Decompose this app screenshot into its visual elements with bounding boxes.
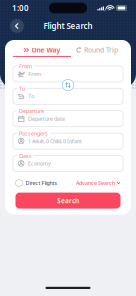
button[interactable]: To — [13, 88, 123, 104]
button[interactable]: Search — [15, 193, 120, 209]
button[interactable]: Round Trip — [71, 46, 123, 57]
staticText: 1 Adult, 0 Child, 0 Infant — [28, 138, 82, 145]
staticText: Departure date — [28, 115, 65, 122]
staticText: Search — [57, 196, 79, 205]
staticText: Departure — [19, 107, 44, 115]
staticText: Flight Search — [43, 21, 92, 31]
staticText: One Way — [31, 46, 60, 54]
button[interactable]: One Way — [13, 46, 71, 57]
staticText: From — [28, 70, 41, 77]
button[interactable]: From — [13, 66, 123, 82]
button[interactable]: 1 Adult, 0 Child, 0 Infant — [13, 133, 123, 149]
button[interactable]: Back — [8, 17, 26, 35]
staticText: Economy — [28, 160, 51, 167]
staticText: 1:00 — [12, 3, 29, 13]
button[interactable]: Advance Search — [76, 178, 120, 188]
staticText: Passengers — [19, 130, 48, 137]
staticText: Direct Flights — [25, 179, 57, 187]
button[interactable]: Economy — [13, 155, 123, 171]
staticText: Round Trip — [84, 46, 118, 54]
staticText: To — [19, 85, 25, 92]
button[interactable]: Departure date — [13, 111, 123, 127]
staticText: Class — [19, 152, 32, 159]
staticText: From — [19, 63, 32, 70]
staticText: Advance Search — [76, 179, 115, 187]
staticText: To — [28, 93, 34, 100]
button[interactable]: Direct Flights — [15, 178, 57, 188]
